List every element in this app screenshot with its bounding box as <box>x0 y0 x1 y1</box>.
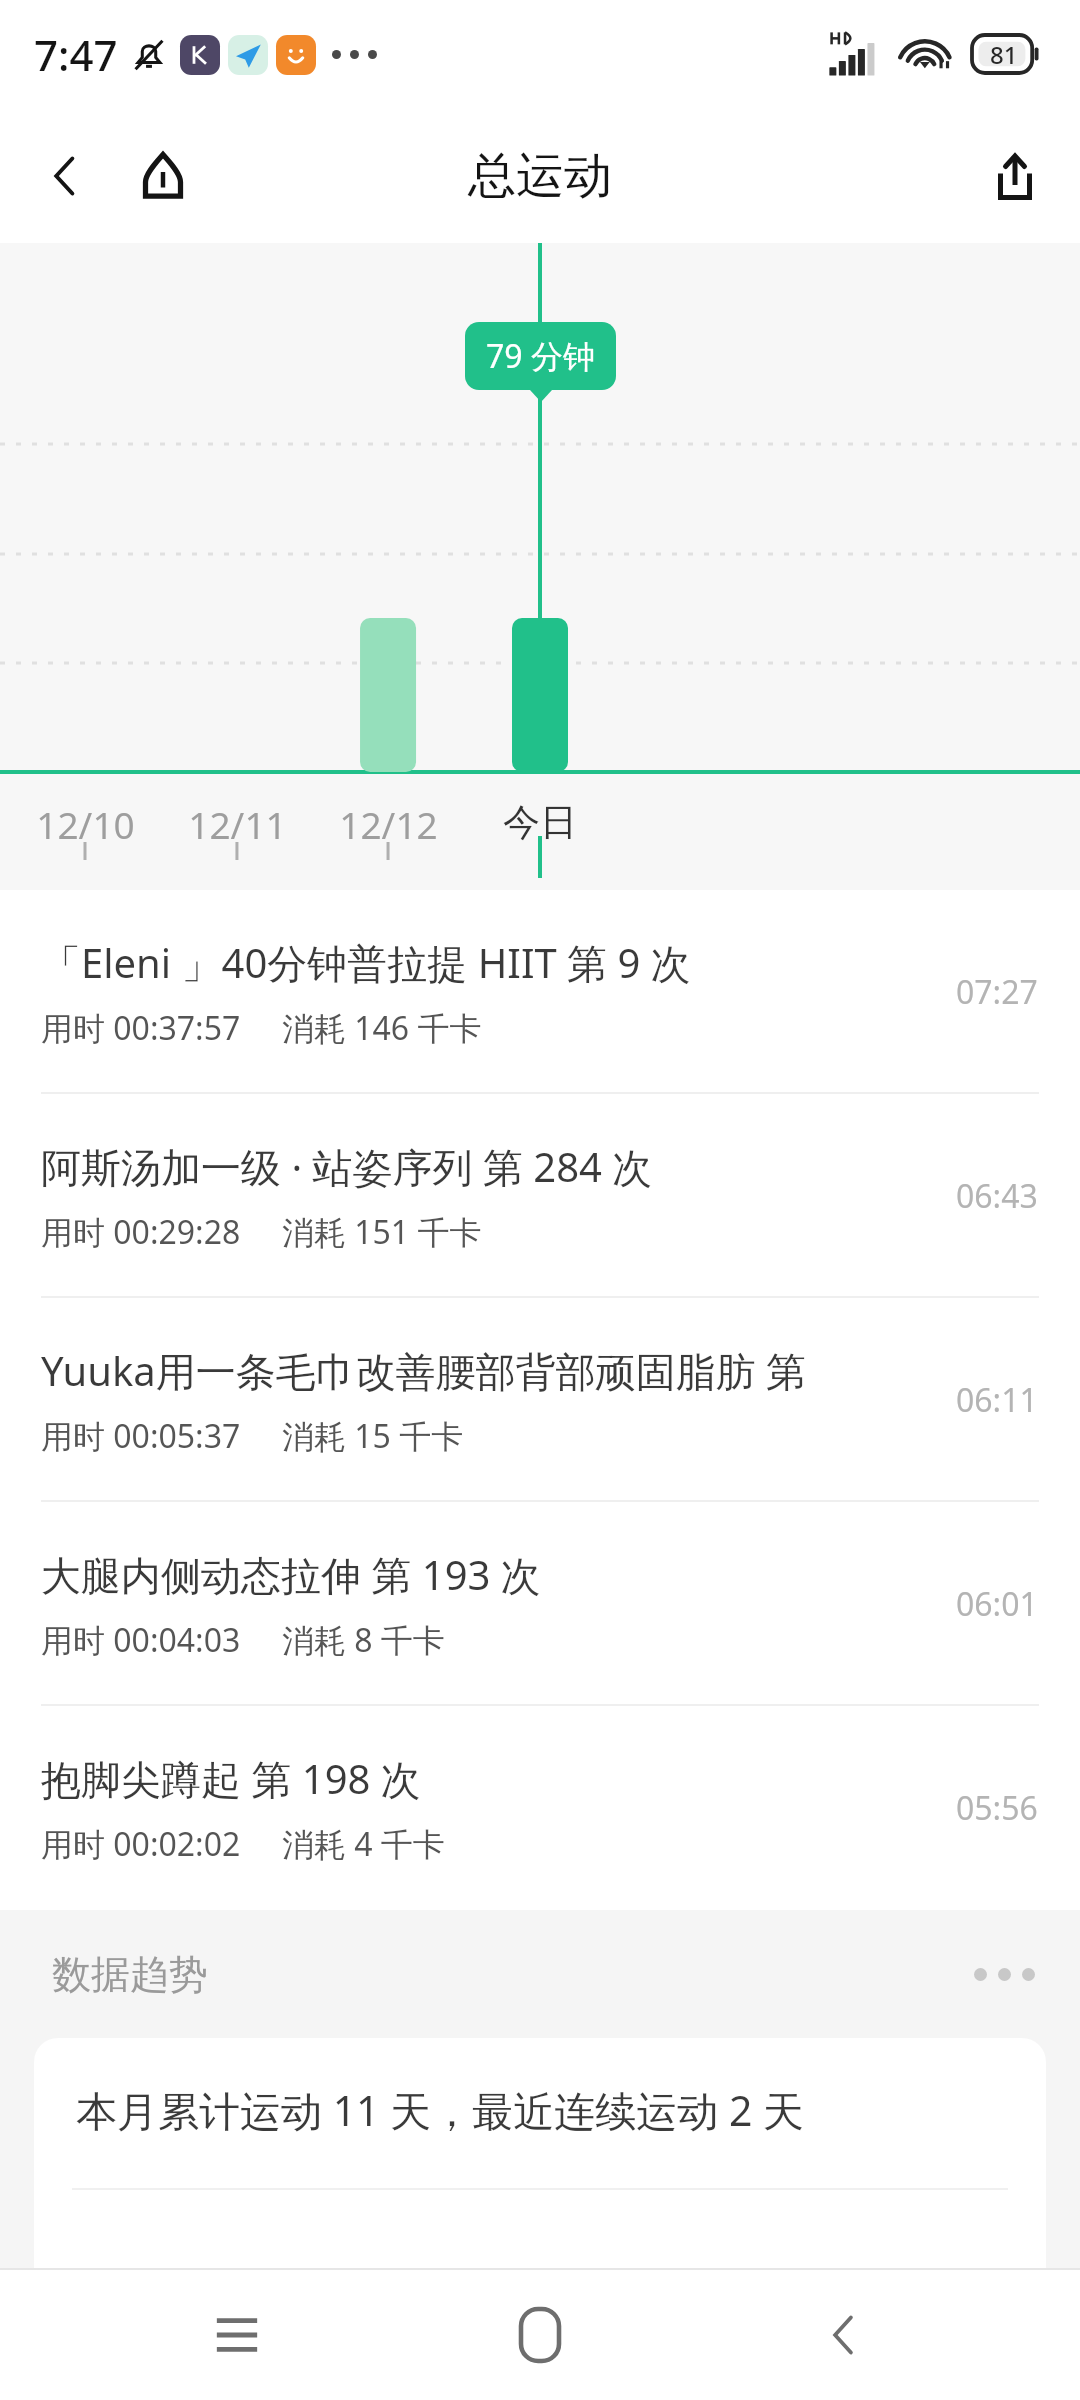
button[interactable]: 抱脚尖蹲起 第 198 次 <box>0 1706 1080 1910</box>
staticText: 用时 00:37:57 消耗 146 千卡 <box>41 1006 482 1050</box>
staticText: 用时 00:04:03 消耗 8 千卡 <box>41 1618 445 1662</box>
staticText: 81 <box>990 38 1018 71</box>
staticText: 05:56 <box>956 1786 1038 1830</box>
staticText: 06:11 <box>956 1378 1038 1422</box>
button[interactable]: More options <box>962 1932 1046 2016</box>
staticText: 总运动 <box>468 146 612 206</box>
staticText: 12/10 <box>36 799 135 849</box>
staticText: 06:01 <box>956 1582 1038 1626</box>
staticText: 用时 00:02:02 消耗 4 千卡 <box>41 1822 445 1866</box>
staticText: 用时 00:29:28 消耗 151 千卡 <box>41 1210 482 1254</box>
button[interactable]: Home <box>126 139 200 213</box>
staticText: 06:43 <box>956 1174 1038 1218</box>
staticText: 79 分钟 <box>486 334 595 378</box>
staticText: 07:27 <box>956 970 1038 1014</box>
staticText: Yuuka用一条毛巾改善腰部背部顽固脂肪 第 173 次 <box>41 1343 885 1398</box>
button[interactable]: 79 分钟 <box>465 322 616 390</box>
staticText: 「Eleni 」40分钟普拉提 HIIT 第 9 次 <box>41 935 691 990</box>
button[interactable]: Back <box>28 139 102 213</box>
staticText: 阿斯汤加一级 · 站姿序列 第 284 次 <box>41 1139 653 1194</box>
staticText: 7:47 <box>34 26 118 83</box>
button[interactable]: Back <box>777 2270 909 2400</box>
staticText: 12/11 <box>188 799 287 849</box>
button[interactable]: Recent apps <box>171 2270 303 2400</box>
staticText: 抱脚尖蹲起 第 198 次 <box>41 1751 421 1806</box>
button[interactable]: 大腿内侧动态拉伸 第 193 次 <box>0 1502 1080 1706</box>
staticText: 12/12 <box>339 799 438 849</box>
staticText: 今日 <box>503 799 577 846</box>
button[interactable]: Yuuka用一条毛巾改善腰部背部顽固脂肪 第 173 次 <box>0 1298 1080 1502</box>
button[interactable]: 本月累计运动 11 天，最近连续运动 2 天 <box>34 2038 1046 2310</box>
button[interactable]: 「Eleni 」40分钟普拉提 HIIT 第 9 次 <box>0 890 1080 1094</box>
button[interactable]: 阿斯汤加一级 · 站姿序列 第 284 次 <box>0 1094 1080 1298</box>
button[interactable]: Share <box>974 135 1056 217</box>
staticText: 大腿内侧动态拉伸 第 193 次 <box>41 1547 541 1602</box>
button[interactable]: Home <box>474 2270 606 2400</box>
staticText: 本月累计运动 11 天，最近连续运动 2 天 <box>76 2082 804 2138</box>
staticText: 数据趋势 <box>52 1950 208 1999</box>
staticText: 用时 00:05:37 消耗 15 千卡 <box>41 1414 464 1458</box>
